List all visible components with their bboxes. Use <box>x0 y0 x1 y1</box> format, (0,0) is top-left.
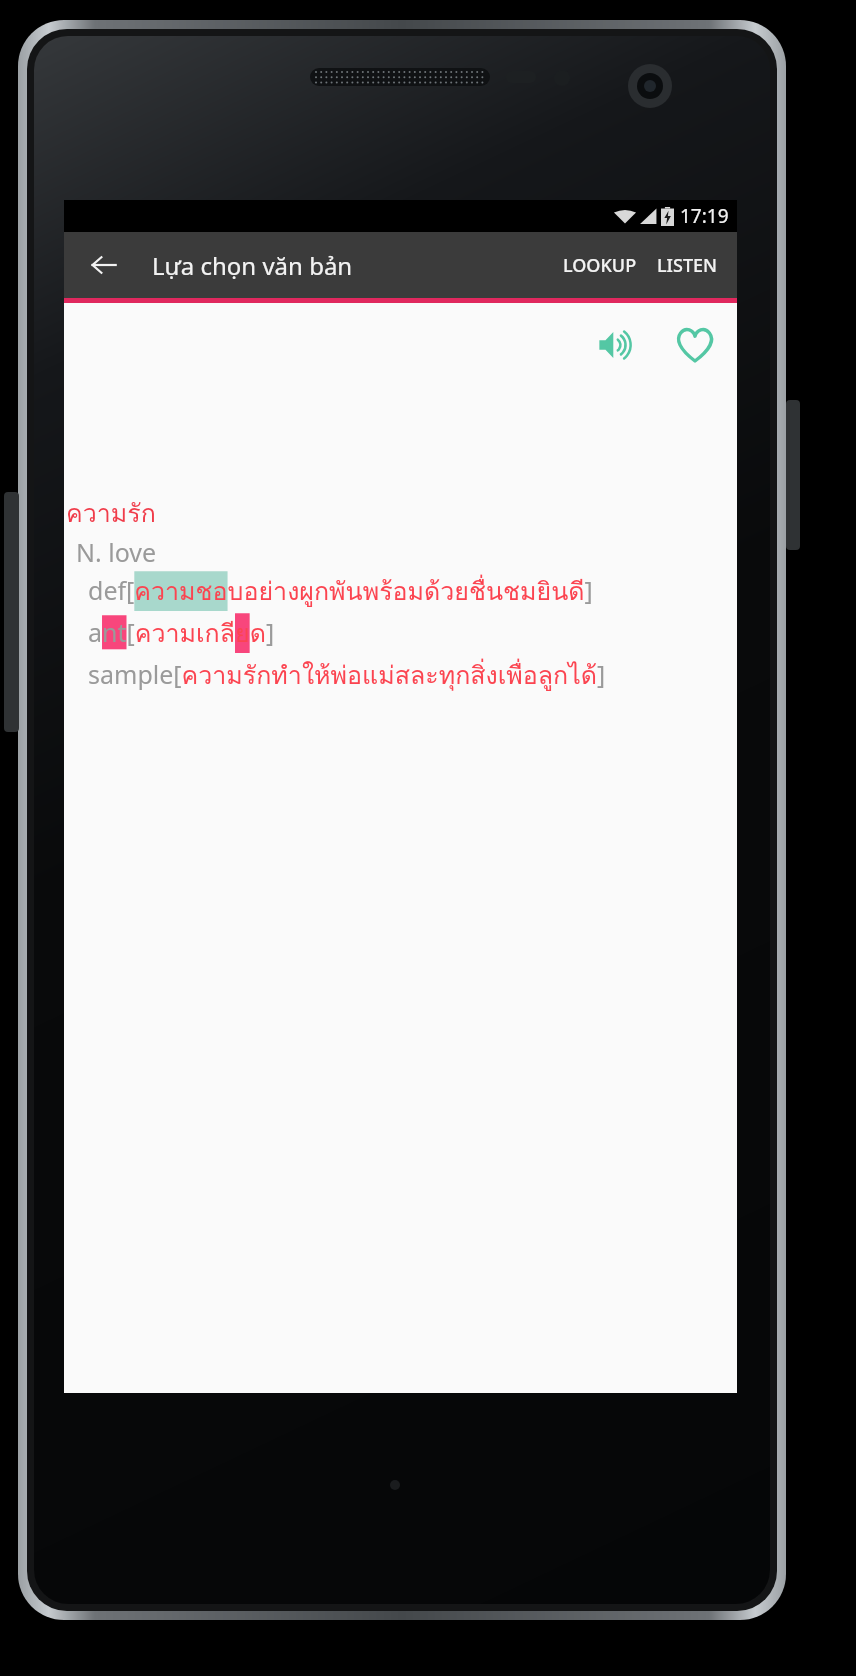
staticText: LOOKUP <box>563 253 637 278</box>
button[interactable]: Back <box>78 239 130 291</box>
staticText: def[ความชอบอย่างผูกพันพร้อมด้วยชื่นชมยิน… <box>88 571 593 611</box>
staticText: LISTEN <box>657 253 717 278</box>
staticText: ant[ความเกลียด] <box>88 613 275 653</box>
button[interactable]: LOOKUP <box>553 239 647 292</box>
button[interactable]: Speak <box>587 317 643 373</box>
staticText: Lựa chọn văn bản <box>152 249 353 282</box>
staticText: N. love <box>76 535 157 569</box>
staticText: sample[ความรักทำให้พ่อแม่สละทุกสิ่งเพื่อ… <box>88 655 606 695</box>
staticText: ความรัก <box>66 493 156 533</box>
staticText: 17:19 <box>680 203 729 229</box>
button[interactable]: LISTEN <box>647 239 727 292</box>
button[interactable]: Favourite <box>667 317 723 373</box>
